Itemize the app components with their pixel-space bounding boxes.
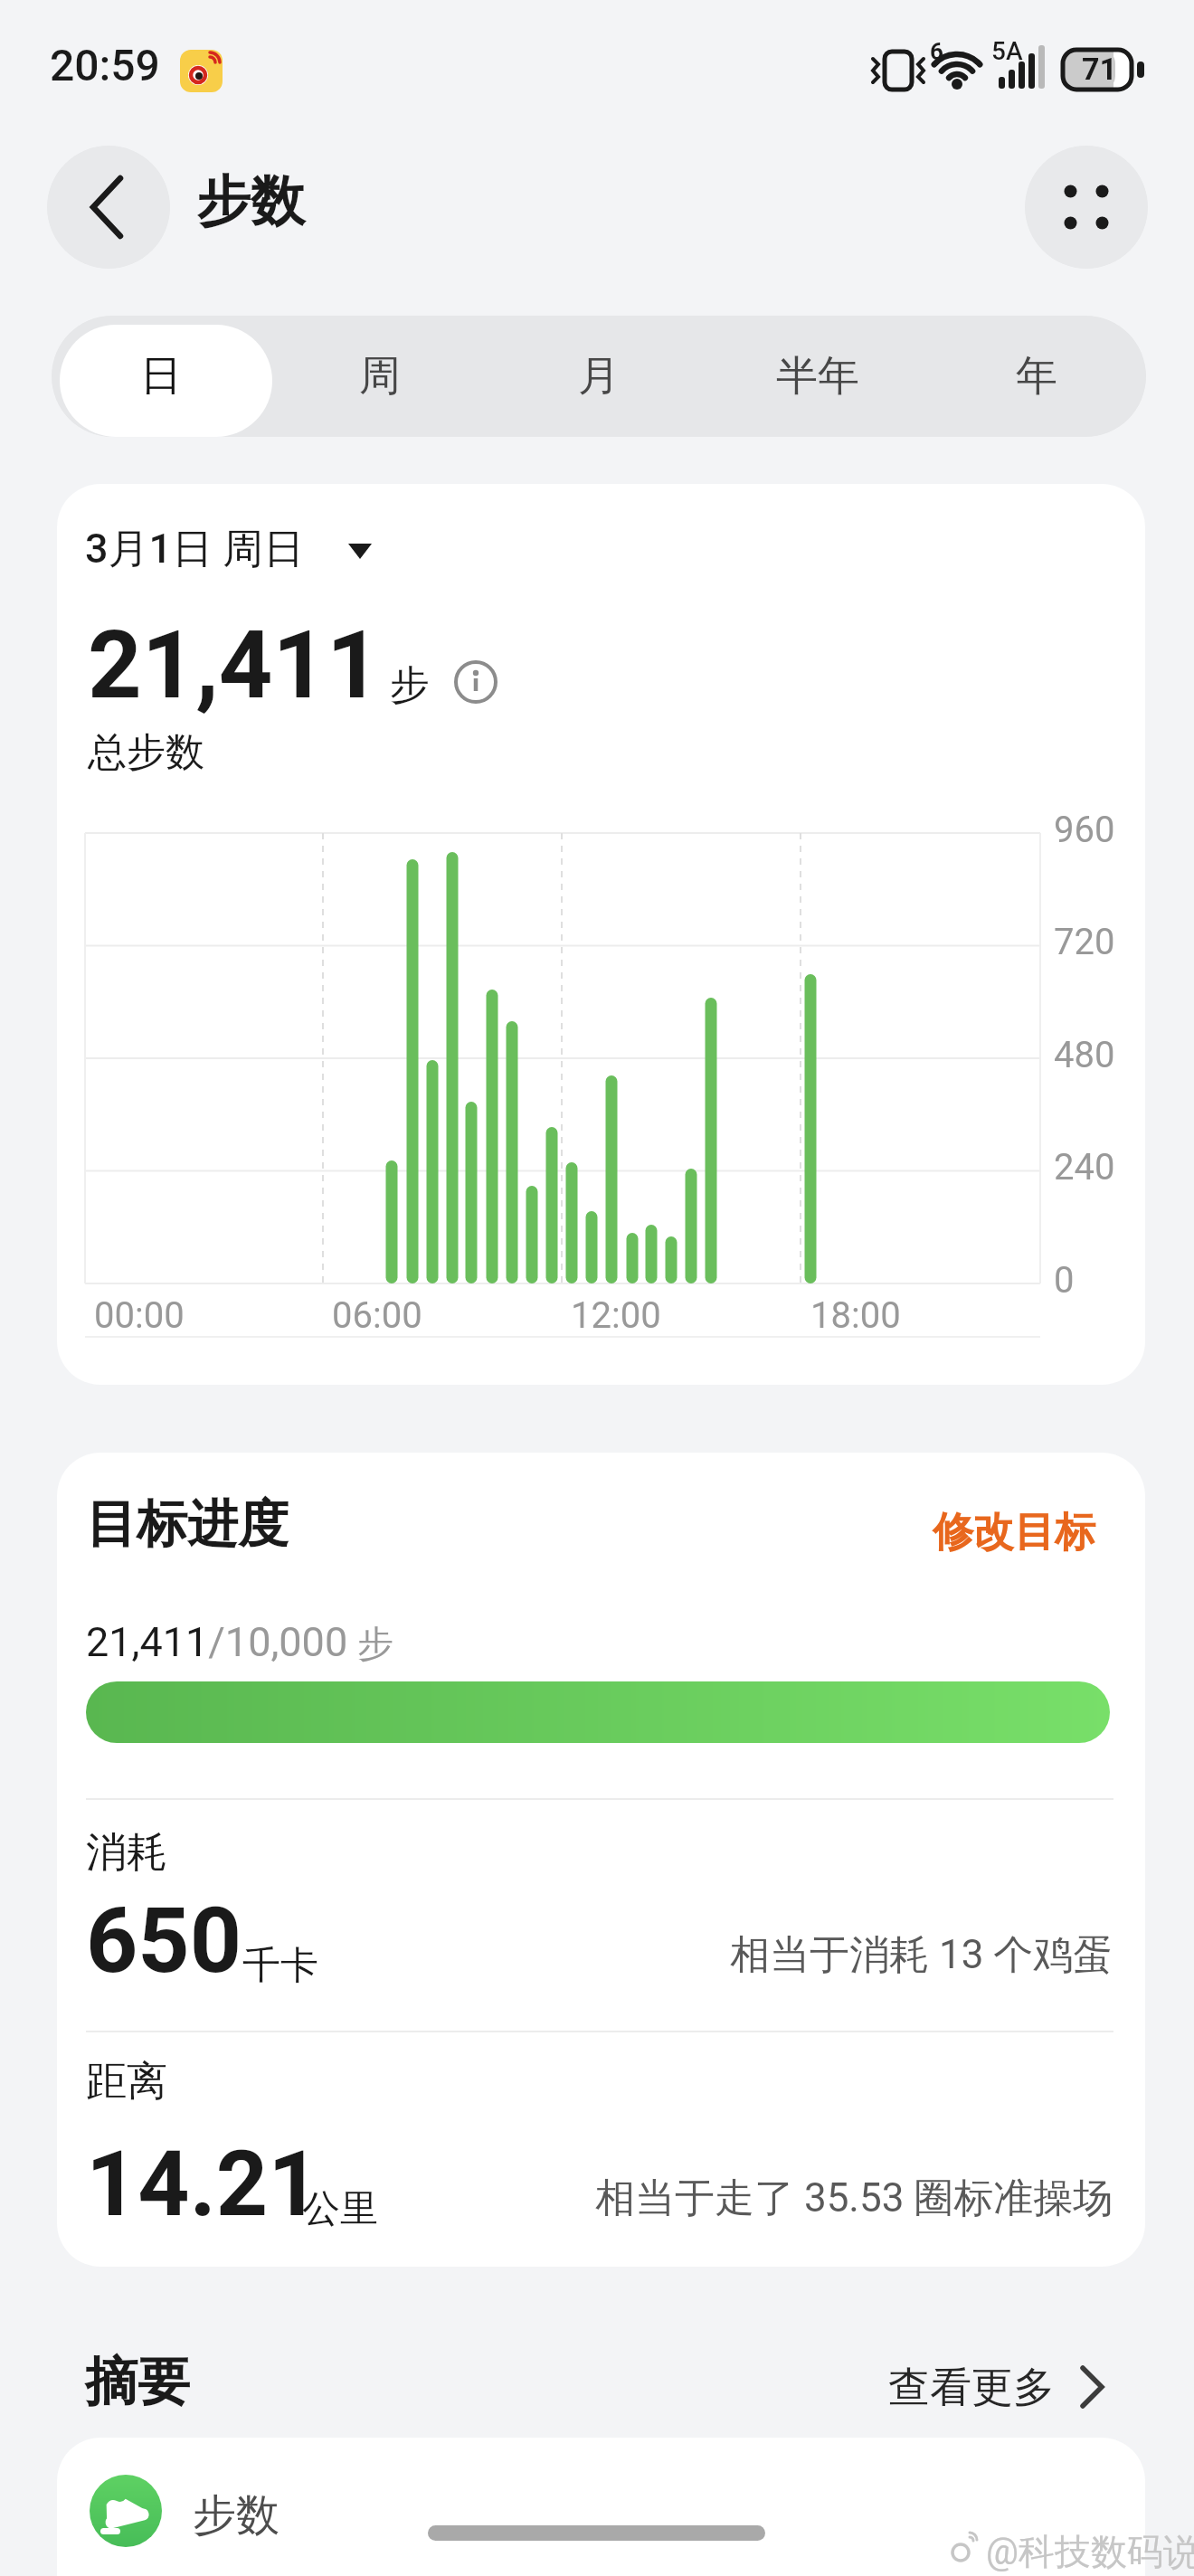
staticText: 相当于走了 35.53 圈标准操场 [595,2173,1113,2223]
staticText: 步数 [196,167,305,236]
staticText: 半年 [776,350,859,402]
staticText: 20:59 [50,40,160,90]
button[interactable] [1025,146,1148,269]
button[interactable] [47,146,170,269]
staticText: 18:00 [810,1294,901,1337]
staticText: 06:00 [332,1294,422,1337]
staticText: 步数 [193,2488,280,2543]
staticText: 公里 [302,2185,378,2233]
staticText: 6 [930,38,943,65]
staticText: 14.21 [86,2131,320,2237]
button[interactable]: 3月1日 周日 [85,522,386,576]
button[interactable] [453,659,498,705]
staticText: 千卡 [242,1942,318,1990]
staticText: 650 [86,1888,242,1994]
staticText: 0 [1054,1259,1075,1302]
staticText: 12:00 [571,1294,661,1337]
staticText: 消耗 [86,1827,167,1879]
staticText: 月 [578,350,620,402]
staticText: 71 [1082,51,1118,87]
button[interactable]: 年 [927,316,1146,437]
button[interactable]: 查看更多 [868,2358,1113,2421]
staticText: 21,411 [88,611,381,721]
staticText: 年 [1016,350,1057,402]
staticText: 步 [390,660,430,710]
staticText: 查看更多 [888,2362,1055,2414]
staticText: @科技数码说 [986,2529,1194,2574]
staticText: 240 [1054,1146,1115,1189]
staticText: 总步数 [88,728,204,777]
staticText: 480 [1054,1034,1115,1076]
staticText: 摘要 [85,2349,190,2415]
staticText: 720 [1054,921,1115,963]
button[interactable]: 月 [489,316,708,437]
button[interactable]: 日 [52,316,270,437]
button[interactable]: 周 [270,316,489,437]
staticText: 目标进度 [86,1492,289,1557]
staticText: 修改目标 [933,1507,1095,1558]
staticText: 960 [1054,809,1115,851]
staticText: 周 [359,350,401,402]
button[interactable]: 修改目标 [933,1507,1113,1561]
button[interactable]: 步数 [57,2438,1145,2576]
staticText: 相当于消耗 13 个鸡蛋 [730,1930,1113,1980]
staticText: 距离 [86,2056,167,2107]
staticText: 21,411/10,000 步 [86,1618,394,1667]
staticText: 00:00 [94,1294,185,1337]
staticText: 3月1日 周日 [85,524,305,575]
button[interactable]: 半年 [708,316,927,437]
staticText: 5A [991,36,1023,66]
staticText: 日 [140,350,182,402]
